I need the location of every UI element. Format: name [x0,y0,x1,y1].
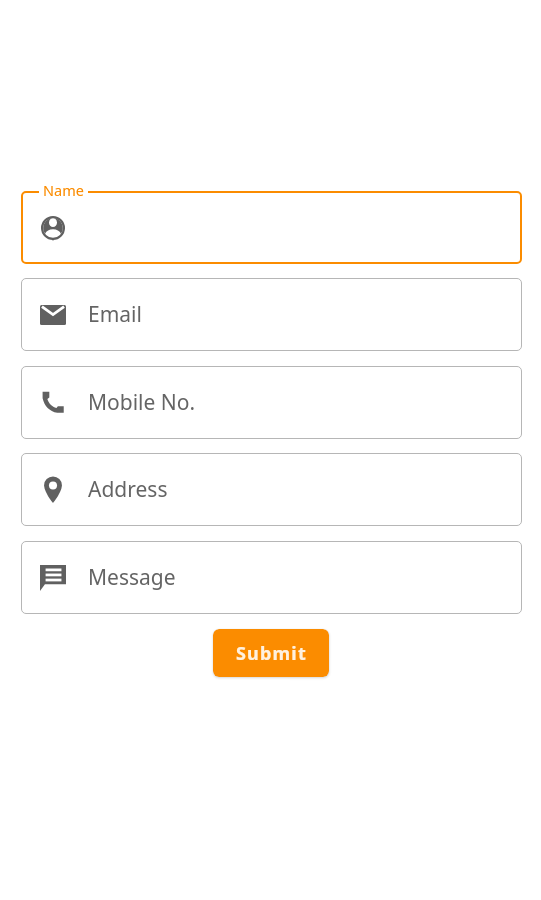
button[interactable]: Submit [213,629,329,677]
staticText: Name [43,180,84,200]
button[interactable]: Name [21,191,522,264]
staticText: Mobile No. [88,388,196,417]
button[interactable]: Mobile No. [21,366,522,439]
staticText: Address [88,475,168,504]
button[interactable]: Address [21,453,522,526]
button[interactable]: Message [21,541,522,614]
staticText: Message [88,563,176,592]
button[interactable]: Email [21,278,522,351]
button[interactable]: Name [43,180,84,200]
staticText: Submit [236,641,307,666]
staticText: Email [88,300,142,329]
